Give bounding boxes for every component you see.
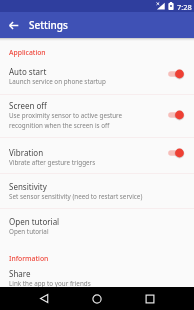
staticText: Open tutorial bbox=[9, 227, 49, 236]
button[interactable]: Home bbox=[80, 287, 114, 310]
staticText: 7:28 bbox=[177, 2, 192, 12]
staticText: Open tutorial bbox=[9, 216, 60, 227]
staticText: Auto start bbox=[9, 66, 47, 77]
staticText: Screen off bbox=[9, 100, 47, 111]
staticText: Settings bbox=[29, 18, 68, 32]
staticText: Share bbox=[9, 268, 31, 279]
button[interactable]: Toggle bbox=[162, 144, 190, 162]
staticText: Set sensor sensitivity (need to restart … bbox=[9, 192, 143, 201]
staticText: Information bbox=[9, 254, 49, 263]
staticText: Sensitivity bbox=[9, 181, 47, 192]
button[interactable]: Toggle bbox=[162, 106, 190, 124]
staticText: Vibrate after gesture triggers bbox=[9, 158, 96, 167]
button[interactable]: Back bbox=[27, 287, 61, 310]
staticText: Launch service on phone startup bbox=[9, 77, 106, 86]
staticText: Application bbox=[9, 48, 46, 57]
button[interactable]: Toggle bbox=[162, 65, 190, 83]
button[interactable]: Recent apps bbox=[133, 287, 167, 310]
staticText: Vibration bbox=[9, 147, 44, 158]
button[interactable]: Navigate up bbox=[0, 12, 26, 38]
staticText: Link the app to your friends bbox=[9, 279, 91, 288]
staticText: Use proximity sensor to active gesture r… bbox=[9, 111, 123, 130]
